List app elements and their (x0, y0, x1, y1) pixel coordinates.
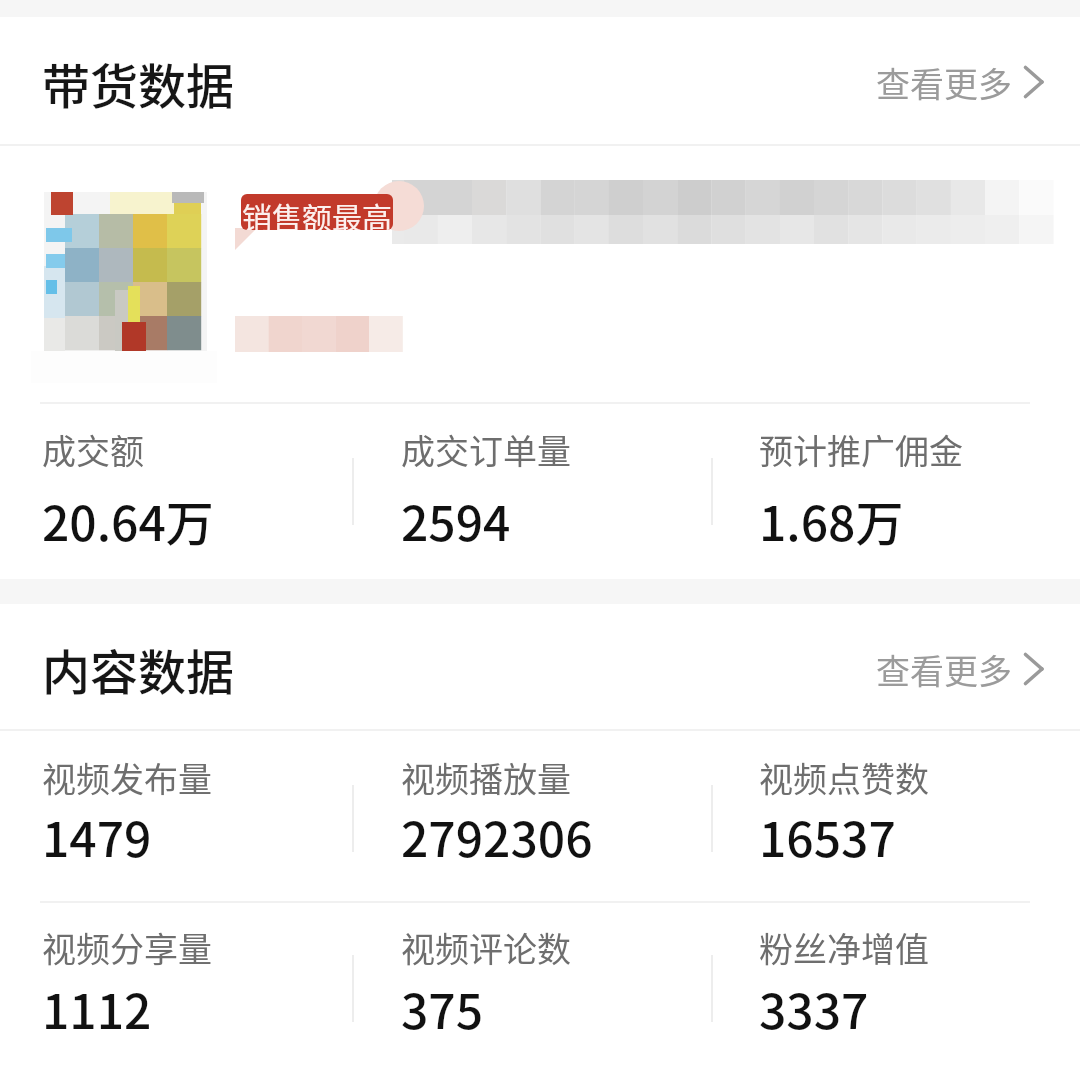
button[interactable]: 查看更多 (876, 47, 1062, 117)
other: 查看更多 (1024, 647, 1043, 691)
staticText: 375 (401, 973, 484, 1043)
staticText: 视频评论数 (401, 923, 571, 972)
staticText: 视频播放量 (401, 753, 571, 802)
other: 查看更多 (1024, 60, 1043, 104)
staticText: 20.64万 (42, 485, 214, 555)
staticText: 销售额最高 (242, 194, 392, 230)
staticText: 3337 (759, 973, 869, 1043)
staticText: 粉丝净增值 (759, 923, 929, 972)
staticText: 视频发布量 (42, 753, 212, 802)
staticText: 16537 (759, 801, 896, 871)
button[interactable] (42, 745, 372, 855)
button[interactable] (42, 915, 372, 1025)
staticText: 内容数据 (42, 634, 235, 704)
button[interactable]: 销售额最高 (241, 194, 393, 230)
staticText: 带货数据 (42, 48, 235, 118)
button[interactable] (401, 417, 731, 527)
staticText: 1112 (42, 973, 152, 1043)
staticText: 视频点赞数 (759, 753, 929, 802)
button[interactable] (759, 745, 1080, 855)
button[interactable]: 查看更多 (876, 634, 1062, 704)
button[interactable] (0, 17, 1080, 144)
button[interactable] (401, 915, 731, 1025)
button[interactable] (0, 604, 1080, 731)
button[interactable] (42, 417, 372, 527)
staticText: 视频分享量 (42, 923, 212, 972)
staticText: 成交额 (42, 425, 144, 474)
staticText: 1.68万 (759, 485, 904, 555)
staticText: 2792306 (401, 801, 593, 871)
staticText: 查看更多 (876, 645, 1012, 694)
staticText: 预计推广佣金 (759, 425, 963, 474)
staticText: 2594 (401, 485, 511, 555)
button[interactable] (759, 915, 1080, 1025)
button[interactable] (0, 146, 1080, 402)
staticText: 查看更多 (876, 58, 1012, 107)
staticText: 1479 (42, 801, 152, 871)
button[interactable] (759, 417, 1080, 527)
button[interactable] (401, 745, 731, 855)
staticText: 成交订单量 (401, 425, 571, 474)
